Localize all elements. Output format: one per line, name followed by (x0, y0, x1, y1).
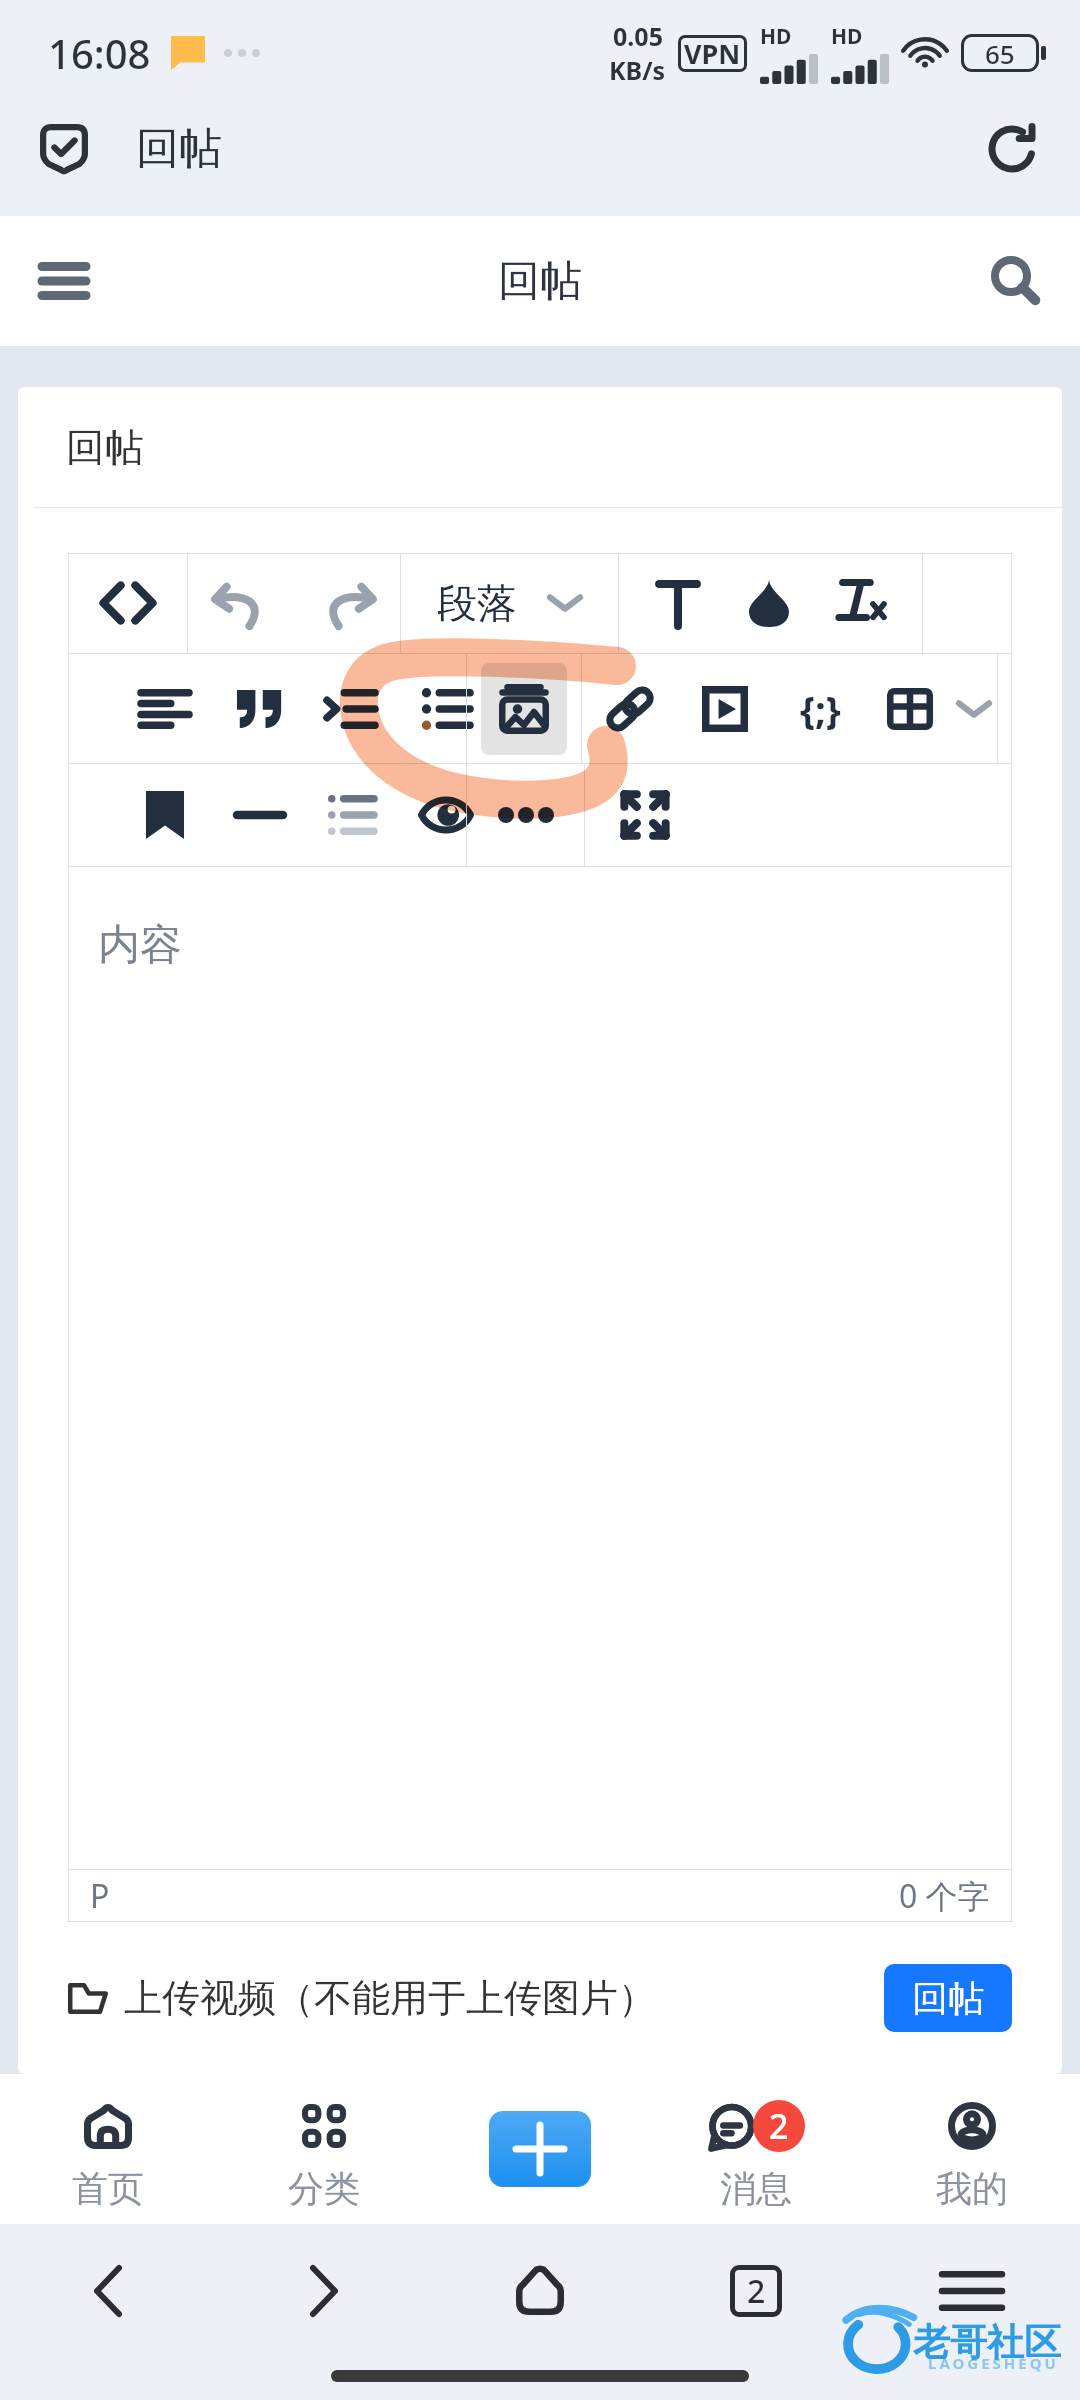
staticText: 0.05 (613, 19, 663, 53)
button[interactable] (68, 553, 187, 653)
button[interactable]: Forward (216, 2224, 432, 2358)
button[interactable]: 分类 (216, 2074, 432, 2224)
button[interactable] (873, 654, 947, 763)
staticText: 回帖 (912, 1976, 984, 2021)
button[interactable] (314, 654, 388, 763)
button[interactable] (128, 654, 202, 763)
button[interactable]: 首页 (0, 2074, 216, 2224)
button[interactable] (688, 654, 762, 763)
staticText: 消息 (720, 2166, 792, 2211)
button[interactable] (223, 654, 297, 763)
staticText: 0 个字 (899, 1874, 990, 1918)
button[interactable] (937, 654, 1011, 763)
staticText: KB/s (609, 53, 666, 87)
staticText: 上传视频（不能用于上传图片） (124, 1974, 656, 2022)
button[interactable]: {;} (783, 654, 857, 763)
button[interactable]: 段落 (401, 553, 618, 653)
button[interactable]: Back (0, 2224, 216, 2358)
button[interactable] (223, 764, 297, 866)
button[interactable]: 上传视频（不能用于上传图片） (68, 1974, 656, 2022)
button[interactable] (314, 764, 388, 866)
staticText: 老哥社区 (913, 2319, 1061, 2366)
staticText: 首页 (72, 2166, 144, 2211)
button[interactable] (188, 553, 400, 653)
staticText: 回帖 (66, 423, 144, 472)
other: Secure (40, 124, 88, 174)
button[interactable]: Tabs (648, 2224, 864, 2358)
staticText: {;} (800, 683, 841, 735)
button[interactable]: Menu (22, 239, 106, 323)
button[interactable] (409, 764, 483, 866)
staticText: P (90, 1874, 110, 1918)
button[interactable] (467, 764, 584, 866)
staticText: HD (760, 22, 792, 51)
button[interactable] (409, 654, 483, 763)
staticText: VPN (684, 35, 741, 72)
button[interactable] (467, 654, 581, 763)
staticText: 我的 (936, 2166, 1008, 2211)
staticText: 内容 (98, 919, 182, 972)
staticText: 16:08 (48, 26, 151, 80)
button[interactable]: New post (489, 2111, 591, 2187)
staticText: 段落 (437, 578, 517, 628)
staticText: 分类 (288, 2166, 360, 2211)
staticText: HD (831, 22, 863, 51)
button[interactable] (619, 553, 922, 653)
button[interactable]: Refresh (982, 119, 1042, 179)
button[interactable] (593, 654, 667, 763)
button[interactable] (608, 764, 682, 866)
staticText: LAOGESHEQU (928, 2353, 1059, 2373)
staticText: 2 (747, 2269, 766, 2313)
button[interactable]: 2 (648, 2074, 864, 2224)
button[interactable]: 回帖 (884, 1964, 1012, 2032)
button[interactable]: Search (974, 239, 1058, 323)
staticText: 回帖 (136, 122, 222, 176)
button[interactable]: Home (432, 2224, 648, 2358)
button[interactable] (128, 764, 202, 866)
staticText: 回帖 (498, 255, 582, 308)
staticText: 65 (985, 36, 1015, 71)
button[interactable]: Menu (864, 2224, 1080, 2358)
staticText: 2 (769, 2103, 789, 2149)
button[interactable]: 我的 (864, 2074, 1080, 2224)
